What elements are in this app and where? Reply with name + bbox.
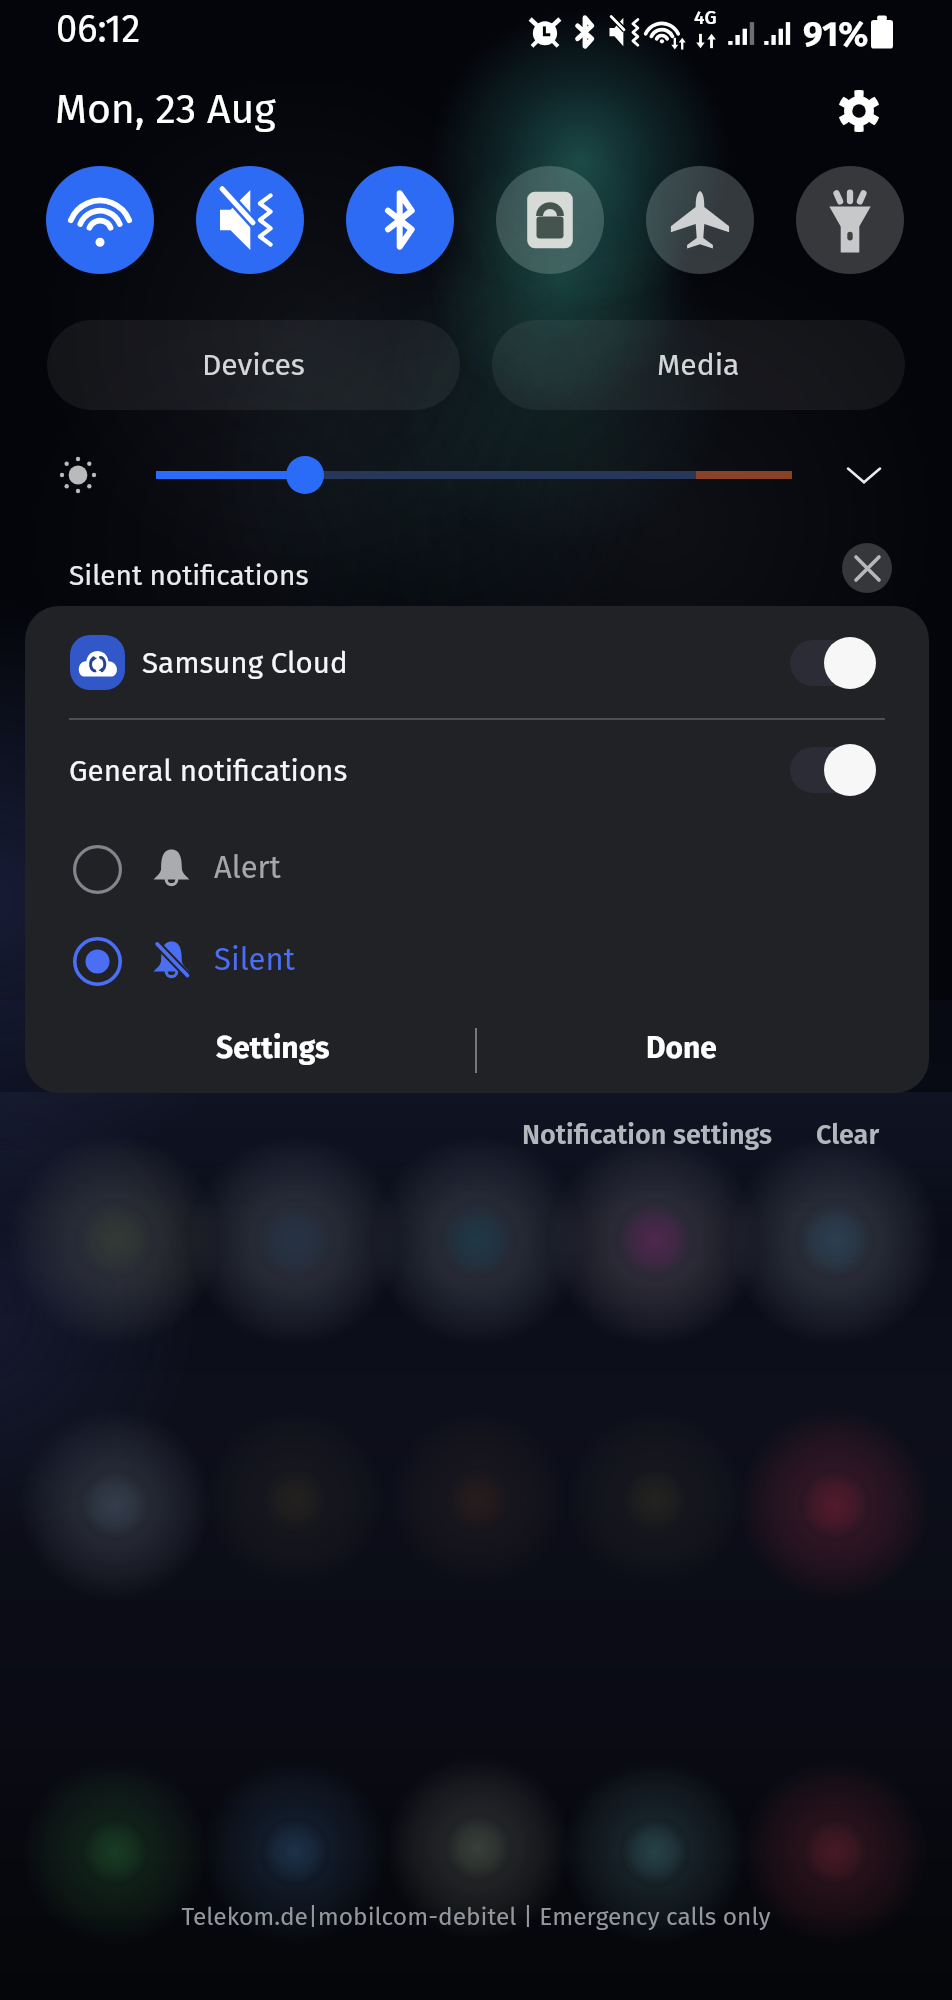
staticText: Alert <box>214 849 281 886</box>
staticText: 4G <box>694 6 717 29</box>
staticText: Telekom.de|mobilcom-debitel | Emergency … <box>0 1902 952 1931</box>
button[interactable]: Wi-Fi <box>46 166 154 274</box>
button[interactable]: Lock <box>496 166 604 274</box>
staticText: Silent <box>214 941 295 978</box>
staticText: Silent notifications <box>69 559 309 593</box>
staticText: 91% <box>803 13 869 55</box>
button[interactable]: Samsung Cloud <box>25 606 929 719</box>
staticText: Samsung Cloud <box>142 645 348 680</box>
staticText: Notification settings <box>522 1119 772 1151</box>
button[interactable]: Media <box>492 320 905 410</box>
button[interactable]: Silent <box>25 914 929 1008</box>
button[interactable]: General notifications on <box>790 742 878 798</box>
button[interactable]: Sound off <box>196 166 304 274</box>
button[interactable]: Close <box>842 543 892 593</box>
button[interactable]: Settings <box>834 86 884 136</box>
button[interactable]: Notification settings <box>522 1107 772 1163</box>
button[interactable]: Airplane mode <box>646 166 754 274</box>
staticText: Media <box>657 347 740 383</box>
staticText: Settings <box>216 1030 330 1066</box>
staticText: 06:12 <box>56 6 141 52</box>
staticText: Clear <box>816 1119 880 1151</box>
button[interactable]: General notifications <box>25 720 929 820</box>
button[interactable]: Clear <box>816 1107 880 1163</box>
button[interactable]: Expand brightness controls <box>841 452 891 502</box>
button[interactable]: Devices <box>47 320 460 410</box>
staticText: General notifications <box>69 753 348 788</box>
button[interactable]: Bluetooth <box>346 166 454 274</box>
button[interactable]: Settings <box>165 1008 381 1093</box>
button[interactable]: Flashlight <box>796 166 904 274</box>
button[interactable]: Done <box>573 1008 789 1093</box>
staticText: Done <box>646 1030 717 1066</box>
staticText: Devices <box>202 347 305 383</box>
button[interactable]: Alert <box>25 822 929 916</box>
staticText: Mon, 23 Aug <box>55 85 276 134</box>
button[interactable]: Samsung Cloud notifications on <box>790 635 878 691</box>
